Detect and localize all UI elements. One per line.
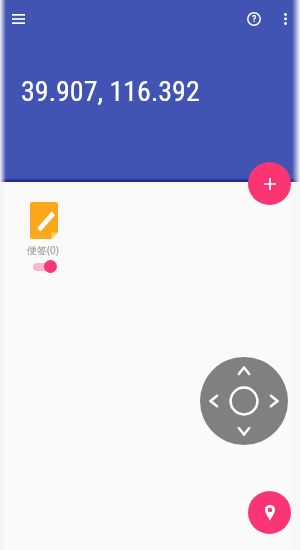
staticText: 39.907, 116.392: [21, 75, 200, 108]
button[interactable]: Toggle notes: [32, 260, 58, 273]
button[interactable]: Add: [248, 162, 291, 205]
button[interactable]: More options: [273, 7, 297, 31]
staticText: 便签(0): [27, 243, 59, 257]
button[interactable]: My location: [248, 491, 291, 534]
button[interactable]: Direction pad: [200, 357, 288, 445]
button[interactable]: Notes: [30, 202, 58, 239]
staticText: ?: [252, 14, 257, 25]
button[interactable]: Menu: [6, 7, 30, 31]
button[interactable]: Help: [242, 7, 266, 31]
